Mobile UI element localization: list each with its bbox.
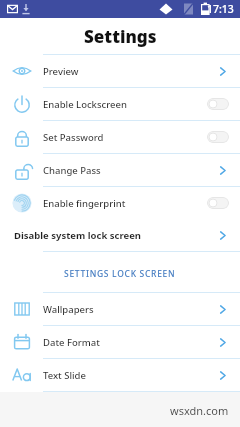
staticText: 17:13 <box>207 2 234 16</box>
button[interactable]: Preview <box>0 55 240 87</box>
other: Open <box>216 336 229 349</box>
other: Open <box>216 164 229 177</box>
staticText: Set Password <box>43 131 207 144</box>
button[interactable]: Change Pass <box>0 154 240 186</box>
staticText: SETTINGS LOCK SCREEN <box>64 268 176 280</box>
staticText: Enable fingerprint <box>43 197 207 210</box>
other: Open <box>216 303 229 316</box>
staticText: Enable Lockscreen <box>43 98 207 111</box>
button[interactable]: Text Slide <box>0 359 240 391</box>
other: Open <box>216 229 229 242</box>
button[interactable]: Toggle <box>207 131 229 143</box>
button[interactable]: Toggle <box>207 98 229 110</box>
staticText: Change Pass <box>43 164 216 177</box>
staticText: Wallpapers <box>43 303 216 316</box>
staticText: Disable system lock screen <box>14 229 216 242</box>
button[interactable]: Enable Lockscreen <box>0 88 240 120</box>
button[interactable]: Wallpapers <box>0 293 240 325</box>
button[interactable]: Enable fingerprint <box>0 187 240 219</box>
other: Open <box>216 369 229 382</box>
staticText: wsxdn.com <box>170 403 229 418</box>
button[interactable]: Set Password <box>0 121 240 153</box>
staticText: Text Slide <box>43 369 216 382</box>
staticText: Preview <box>43 65 216 78</box>
staticText: Settings <box>84 25 157 48</box>
button[interactable]: Date Format <box>0 326 240 358</box>
other: Open <box>216 65 229 78</box>
button[interactable]: Disable system lock screen <box>0 219 240 251</box>
button[interactable]: Toggle <box>207 197 229 209</box>
staticText: Date Format <box>43 336 216 349</box>
